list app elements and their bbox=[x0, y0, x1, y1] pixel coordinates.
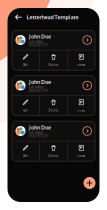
staticText: 4582361201 bbox=[29, 43, 49, 47]
button[interactable]: Create bbox=[68, 141, 95, 161]
button[interactable]: Open details bbox=[83, 127, 91, 135]
button[interactable]: Back bbox=[13, 12, 23, 22]
staticText: Delete bbox=[48, 63, 58, 67]
staticText: job badge bbox=[29, 85, 44, 89]
button[interactable]: Delete bbox=[40, 50, 67, 70]
button[interactable]: Create bbox=[68, 50, 95, 70]
staticText: Delete bbox=[48, 109, 58, 112]
staticText: Letterhead Template bbox=[26, 14, 78, 21]
staticText: John Doe bbox=[29, 33, 51, 40]
button[interactable]: Delete bbox=[40, 141, 67, 161]
staticText: Create bbox=[77, 63, 86, 67]
button[interactable]: Edit bbox=[12, 96, 39, 116]
staticText: 4582361201 bbox=[29, 134, 49, 138]
staticText: job badge bbox=[29, 131, 44, 134]
button[interactable]: Open details bbox=[83, 81, 91, 90]
button[interactable]: Open details bbox=[83, 36, 91, 44]
staticText: Create bbox=[77, 109, 86, 112]
staticText: Edit bbox=[23, 109, 28, 112]
staticText: Delete bbox=[48, 154, 58, 158]
button[interactable]: Add bbox=[83, 177, 95, 189]
staticText: 4582361201 bbox=[29, 89, 49, 92]
staticText: Edit bbox=[23, 63, 28, 67]
button[interactable]: Edit bbox=[12, 141, 39, 161]
button[interactable]: Edit bbox=[12, 50, 39, 70]
staticText: Edit bbox=[23, 154, 28, 158]
staticText: John Doe bbox=[29, 78, 51, 85]
button[interactable]: Delete bbox=[40, 96, 67, 116]
staticText: job badge bbox=[29, 40, 44, 43]
button[interactable]: Create bbox=[68, 96, 95, 116]
staticText: John Doe bbox=[29, 124, 51, 131]
staticText: Create bbox=[77, 154, 86, 158]
